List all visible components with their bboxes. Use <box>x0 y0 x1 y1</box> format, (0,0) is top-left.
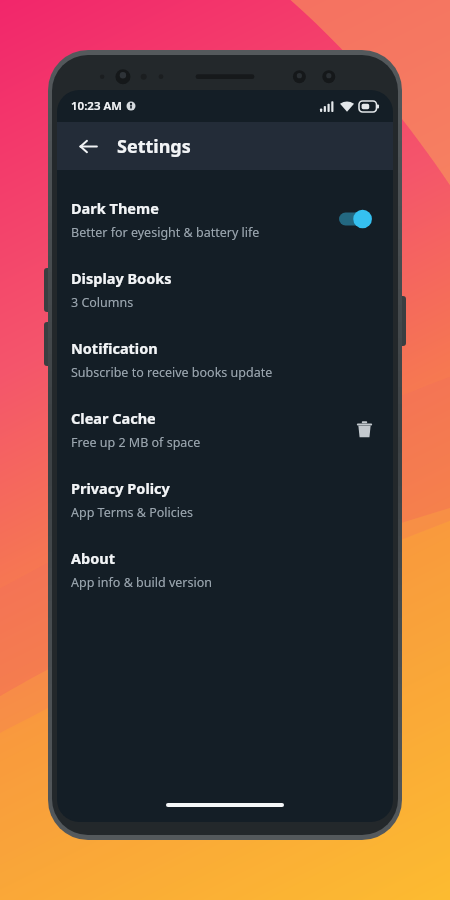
button[interactable]: Back <box>71 129 105 163</box>
button[interactable]: Clear cache <box>349 414 379 444</box>
button[interactable]: Clear Cache <box>57 394 393 464</box>
button[interactable]: Dark theme toggle <box>339 206 379 232</box>
button[interactable]: Notification <box>57 324 393 394</box>
staticText: App Terms & Policies <box>71 504 194 521</box>
staticText: Clear Cache <box>71 408 156 428</box>
staticText: 10:23 AM <box>71 98 122 114</box>
staticText: Privacy Policy <box>71 478 170 498</box>
button[interactable]: Display Books <box>57 254 393 324</box>
button[interactable]: Dark Theme <box>57 184 393 254</box>
staticText: Display Books <box>71 268 172 288</box>
staticText: 3 Columns <box>71 294 134 311</box>
staticText: Settings <box>117 134 191 159</box>
staticText: Subscribe to receive books update <box>71 364 273 381</box>
staticText: Free up 2 MB of space <box>71 434 201 451</box>
staticText: Dark Theme <box>71 198 159 218</box>
button[interactable]: About <box>57 534 393 604</box>
staticText: Better for eyesight & battery life <box>71 224 260 241</box>
staticText: About <box>71 548 115 568</box>
button[interactable]: Privacy Policy <box>57 464 393 534</box>
staticText: App info & build version <box>71 574 212 591</box>
staticText: Notification <box>71 338 158 358</box>
